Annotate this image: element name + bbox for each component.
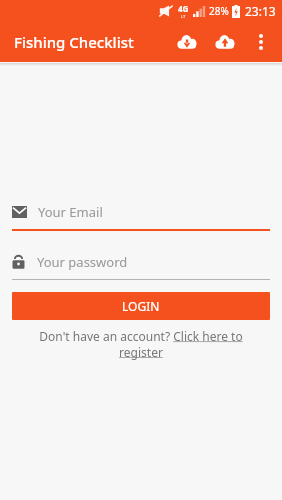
staticText: 28%: [209, 4, 229, 18]
staticText: 23:13: [245, 3, 276, 19]
button[interactable]: More options: [244, 25, 278, 59]
staticText: LOGIN: [122, 298, 160, 314]
staticText: LT: [181, 14, 186, 19]
button[interactable]: LOGIN: [12, 292, 270, 320]
button[interactable]: Your password: [12, 249, 270, 280]
staticText: Fishing Checklist: [14, 32, 134, 52]
button[interactable]: Don't have an account? Click here to reg…: [12, 328, 270, 360]
staticText: Don't have an account? Click here to reg…: [16, 328, 266, 360]
staticText: Your Email: [38, 203, 103, 221]
staticText: Your password: [37, 253, 128, 271]
button[interactable]: Your Email: [12, 199, 270, 231]
button[interactable]: Upload: [206, 23, 244, 61]
staticText: 4G: [178, 3, 189, 14]
button[interactable]: Download: [168, 23, 206, 61]
